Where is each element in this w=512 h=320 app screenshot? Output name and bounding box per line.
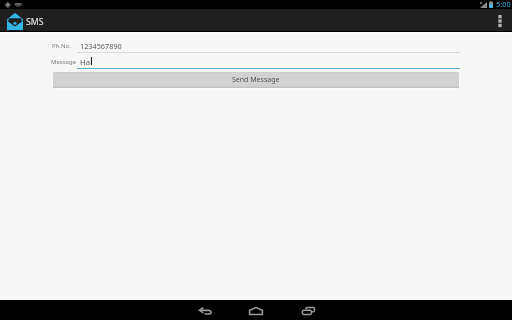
button[interactable]: Recent apps (296, 300, 318, 320)
button[interactable]: Send Message (53, 72, 459, 88)
staticText: Send Message (232, 75, 280, 85)
staticText: SMS (26, 16, 44, 28)
staticText: 1234567890 (80, 41, 122, 51)
button[interactable]: Message input (77, 56, 460, 69)
button[interactable]: SMS (0, 9, 50, 31)
staticText: 5:00 (496, 0, 511, 8)
button[interactable]: Phone number input (77, 40, 460, 53)
button[interactable]: More options (490, 9, 512, 31)
staticText: Ph.No. (52, 42, 71, 50)
staticText: Hai (80, 57, 93, 68)
button[interactable]: Back (194, 300, 216, 320)
staticText: Message (51, 58, 77, 66)
button[interactable]: Home (245, 300, 267, 320)
